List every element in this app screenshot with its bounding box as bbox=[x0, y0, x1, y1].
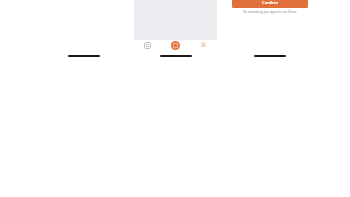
button[interactable]: Profile bbox=[189, 40, 217, 51]
staticText: By continuing you agree to our Terms bbox=[232, 10, 308, 14]
button[interactable]: Browse bbox=[134, 40, 161, 51]
button[interactable]: Home bbox=[161, 40, 189, 51]
button[interactable]: Confirm bbox=[232, 0, 308, 8]
staticText: Confirm bbox=[262, 0, 278, 5]
